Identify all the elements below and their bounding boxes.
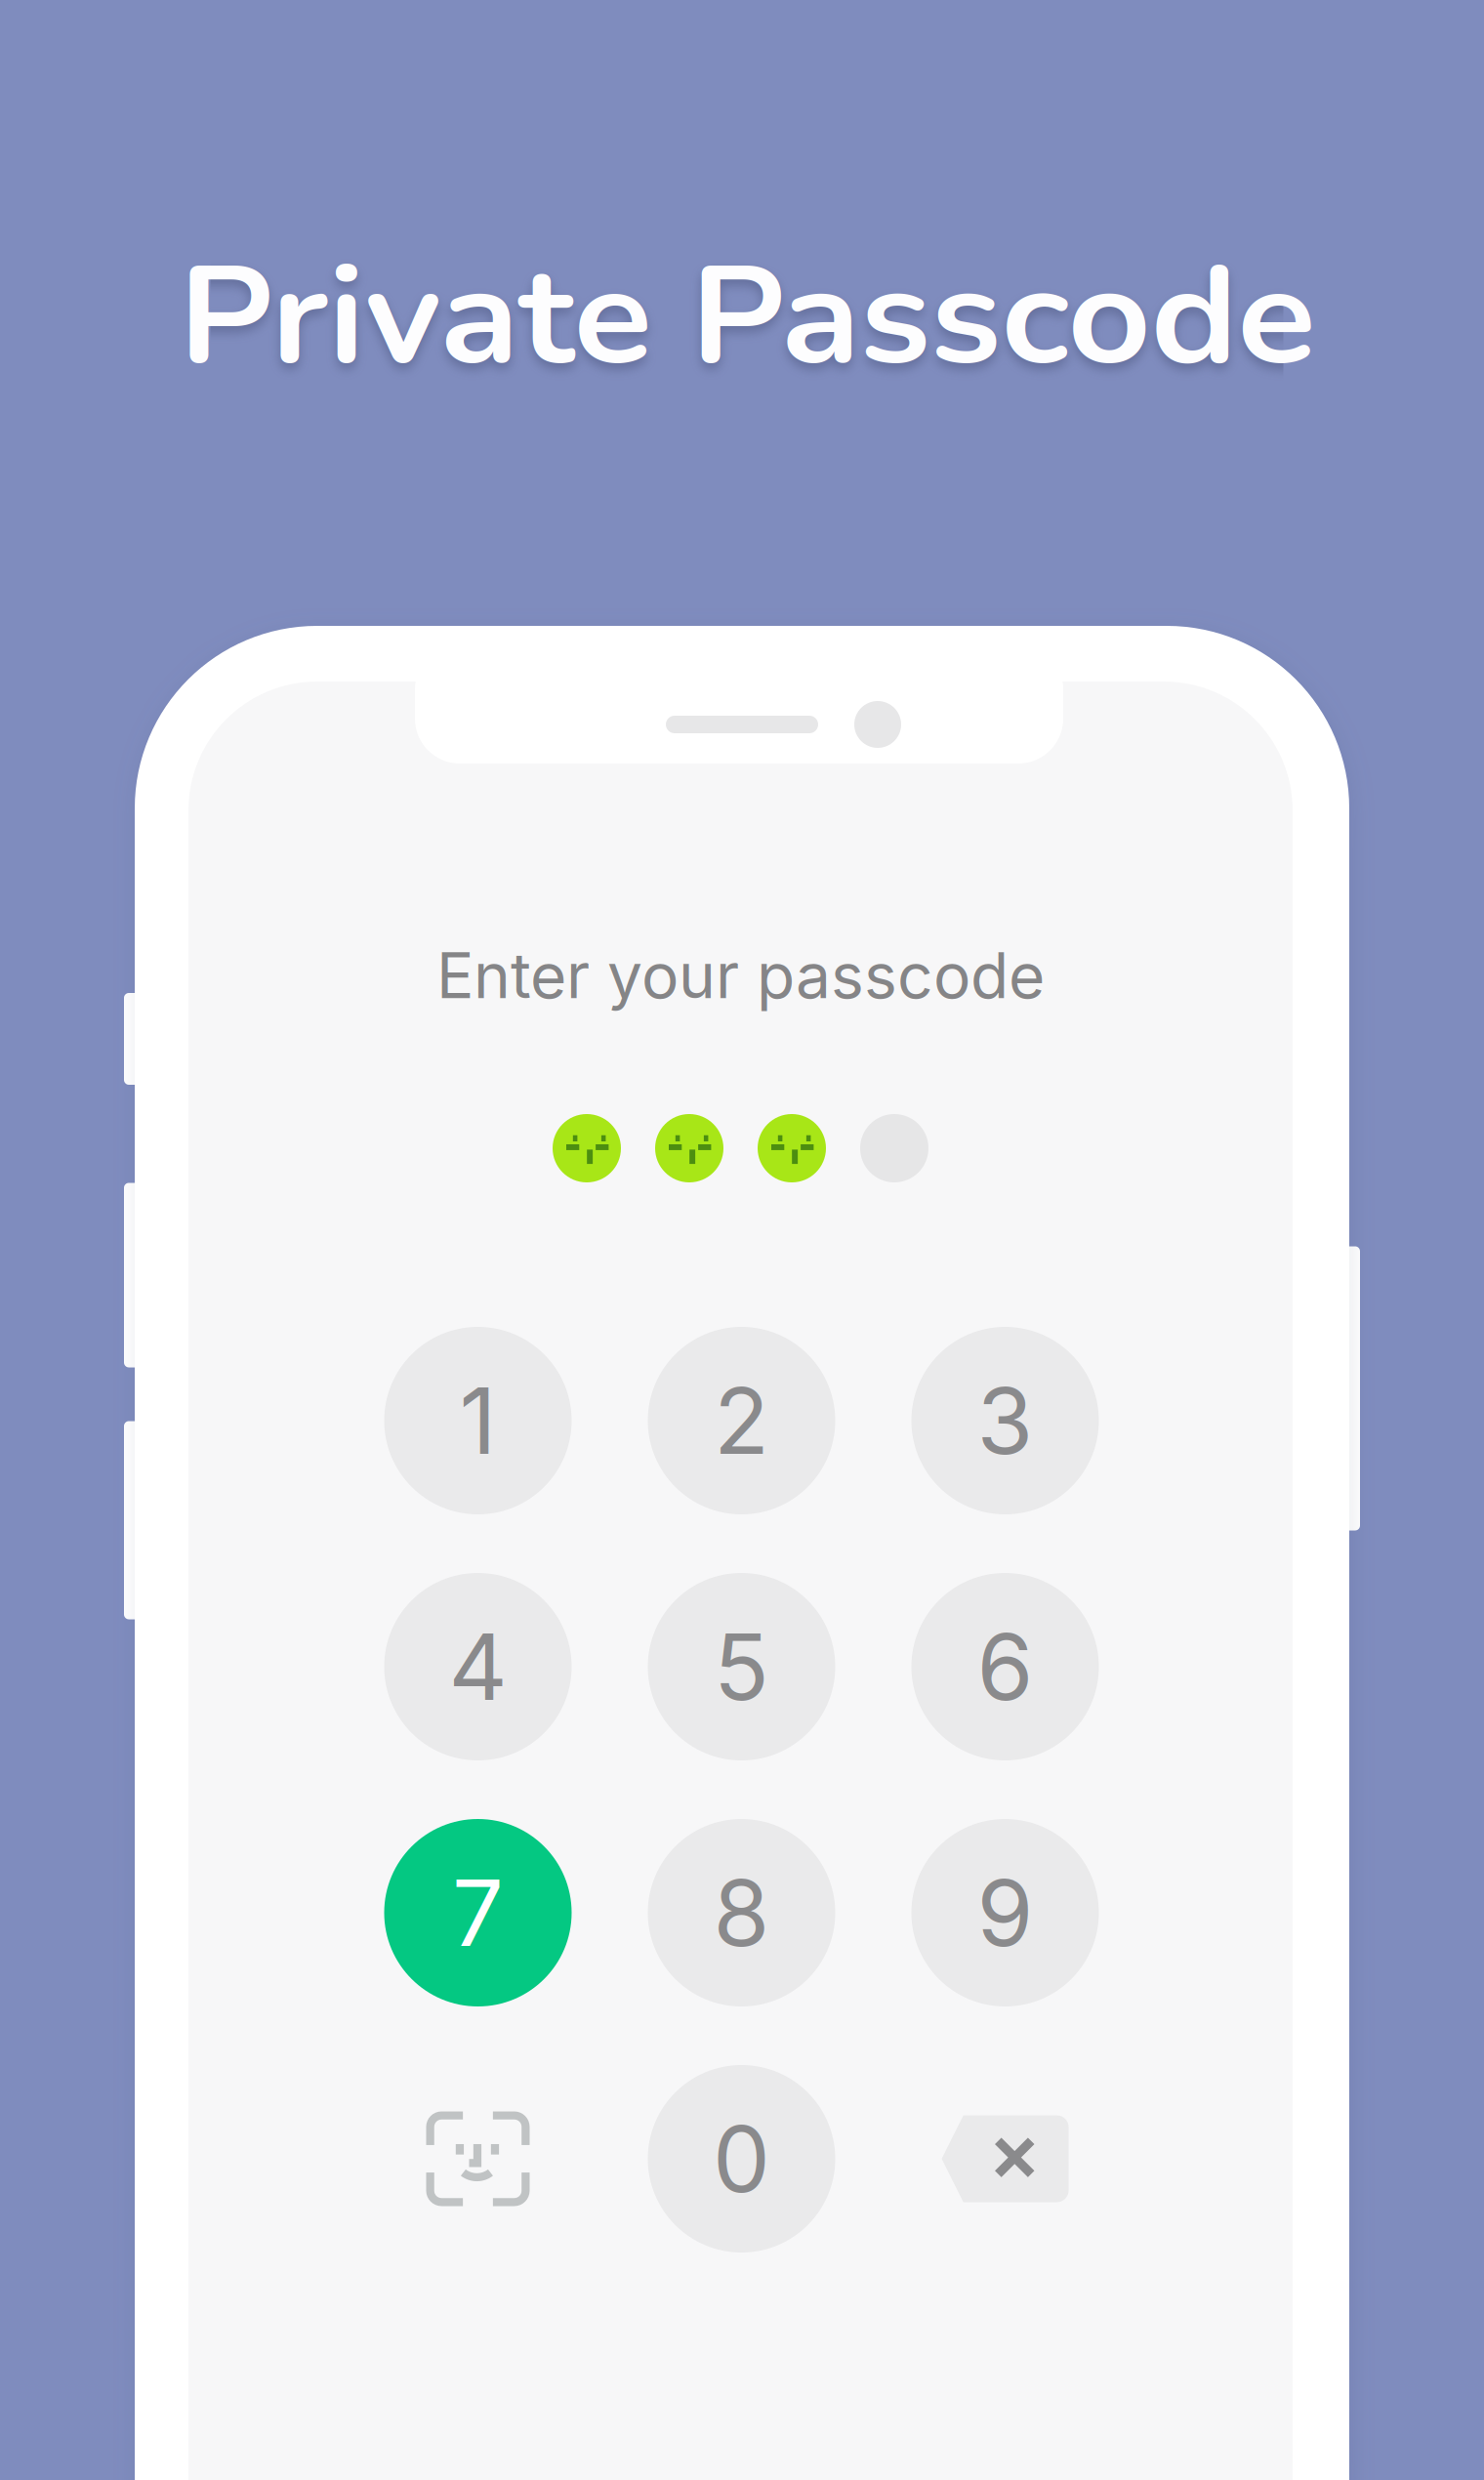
staticText: Enter your passcode bbox=[436, 938, 1045, 1013]
button[interactable]: 2 bbox=[648, 1327, 835, 1514]
button[interactable]: 0 bbox=[648, 2065, 835, 2253]
staticText: 5 bbox=[714, 1612, 769, 1722]
button[interactable]: 1 bbox=[384, 1327, 572, 1514]
staticText: 1 bbox=[459, 1365, 496, 1476]
staticText: 2 bbox=[714, 1365, 769, 1476]
button[interactable]: 3 bbox=[911, 1327, 1099, 1514]
button[interactable]: 8 bbox=[648, 1819, 835, 2006]
button[interactable]: 9 bbox=[911, 1819, 1099, 2006]
staticText: 6 bbox=[977, 1612, 1033, 1722]
staticText: 0 bbox=[713, 2104, 770, 2214]
staticText: 4 bbox=[449, 1612, 507, 1722]
staticText: 7 bbox=[452, 1858, 504, 1968]
button[interactable]: 4 bbox=[384, 1573, 572, 1760]
button[interactable]: 6 bbox=[911, 1573, 1099, 1760]
button[interactable]: 7 bbox=[384, 1819, 572, 2006]
staticText: 8 bbox=[713, 1858, 770, 1968]
button[interactable]: Unlock with Face ID bbox=[384, 2065, 572, 2253]
staticText: 3 bbox=[977, 1365, 1033, 1476]
button[interactable]: Delete bbox=[911, 2065, 1099, 2253]
button[interactable]: 5 bbox=[648, 1573, 835, 1760]
staticText: Private Passcode bbox=[220, 226, 1274, 409]
staticText: 9 bbox=[977, 1858, 1033, 1968]
